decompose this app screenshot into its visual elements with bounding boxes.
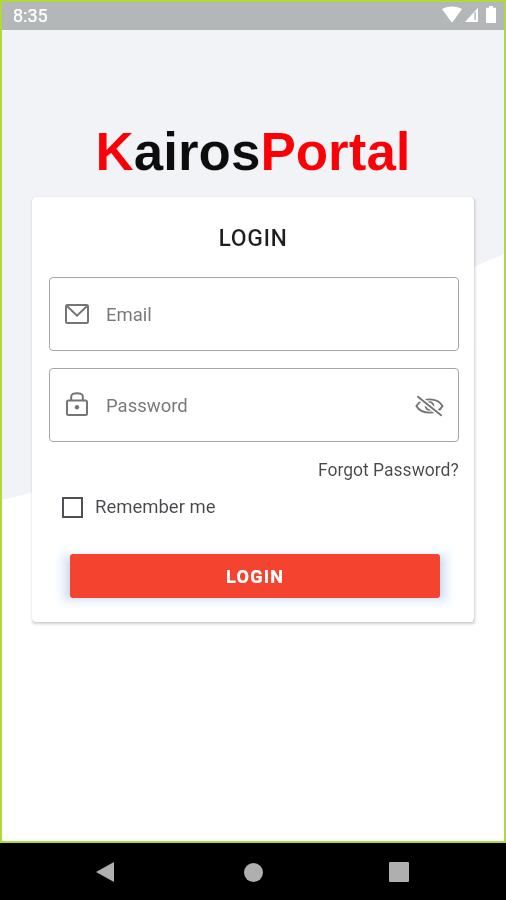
button[interactable]: Remember me <box>62 496 216 518</box>
staticText: 8:35 <box>13 5 48 26</box>
staticText: KairosPortal <box>2 122 504 181</box>
button[interactable]: LOGIN <box>70 554 440 598</box>
button[interactable]: Show password <box>409 386 449 426</box>
staticText: LOGIN <box>32 225 474 252</box>
button[interactable]: Forgot Password? <box>318 460 459 481</box>
button[interactable]: Password <box>49 368 459 442</box>
staticText: Password <box>106 395 188 417</box>
button[interactable]: Recent apps <box>378 851 420 893</box>
staticText: Remember me <box>95 496 216 518</box>
button[interactable]: Home <box>232 851 274 893</box>
staticText: LOGIN <box>226 566 285 587</box>
staticText: Email <box>106 304 152 326</box>
staticText: Forgot Password? <box>318 460 459 481</box>
button[interactable]: Back <box>84 851 126 893</box>
button[interactable]: Email <box>49 277 459 351</box>
